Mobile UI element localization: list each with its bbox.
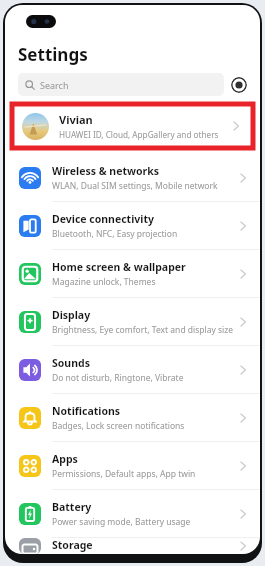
staticText: HUAWEI ID, Cloud, AppGallery and others xyxy=(59,129,219,140)
staticText: Sounds xyxy=(52,356,90,370)
button[interactable]: Storage xyxy=(5,538,260,554)
staticText: Do not disturb, Ringtone, Vibrate xyxy=(52,372,184,384)
staticText: Permissions, Default apps, App twin xyxy=(52,468,196,480)
staticText: Vivian xyxy=(59,112,93,127)
staticText: Display xyxy=(52,308,91,322)
staticText: WLAN, Dual SIM settings, Mobile network xyxy=(52,180,218,192)
button[interactable]: Battery xyxy=(5,490,260,537)
button[interactable]: Notifications xyxy=(5,394,260,441)
staticText: Device connectivity xyxy=(52,212,154,226)
staticText: Power saving mode, Battery usage xyxy=(52,516,191,528)
staticText: Battery xyxy=(52,500,92,514)
staticText: Badges, Lock screen notifications xyxy=(52,420,185,432)
staticText: Wireless & networks xyxy=(52,164,159,178)
staticText: Home screen & wallpaper xyxy=(52,260,186,274)
button[interactable]: Home screen & wallpaper xyxy=(5,250,260,297)
staticText: Magazine unlock, Themes xyxy=(52,276,156,288)
staticText: Notifications xyxy=(52,404,121,418)
button[interactable]: Search xyxy=(18,73,224,96)
button[interactable]: Sounds xyxy=(5,346,260,393)
button[interactable]: Apps xyxy=(5,442,260,489)
button[interactable]: Display xyxy=(5,298,260,345)
staticText: Settings xyxy=(18,43,88,66)
staticText: Search xyxy=(40,79,69,91)
button[interactable]: Vivian xyxy=(12,104,253,148)
staticText: Bluetooth, NFC, Easy projection xyxy=(52,228,178,240)
staticText: Apps xyxy=(52,452,78,466)
staticText: Storage xyxy=(52,538,93,552)
button[interactable]: Device connectivity xyxy=(5,202,260,249)
staticText: Brightness, Eye comfort, Text and displa… xyxy=(52,324,234,336)
button[interactable]: Wireless & networks xyxy=(5,154,260,201)
button[interactable]: Voice search xyxy=(231,77,247,93)
